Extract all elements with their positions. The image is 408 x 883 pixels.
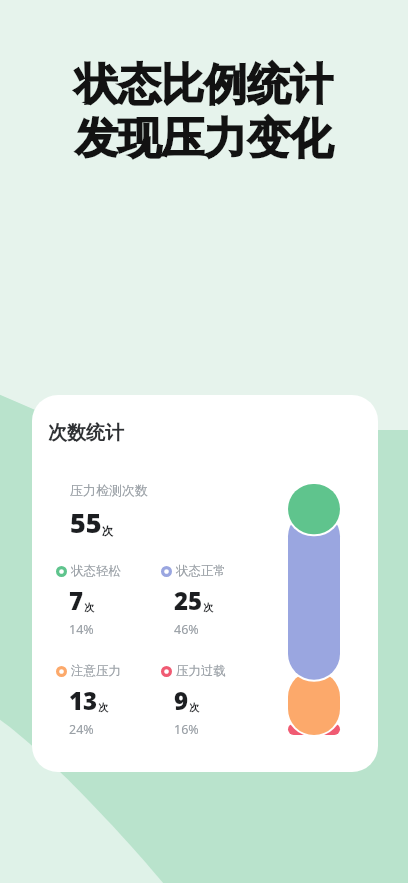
staticText: 次 bbox=[203, 601, 214, 614]
button[interactable]: 次数统计 bbox=[32, 395, 378, 772]
staticText: 状态轻松 bbox=[71, 563, 121, 579]
staticText: 46% bbox=[174, 621, 199, 638]
staticText: 压力过载 bbox=[176, 663, 226, 679]
staticText: 14% bbox=[69, 621, 94, 638]
staticText: 次 bbox=[98, 701, 109, 714]
staticText: 状态正常 bbox=[176, 563, 226, 579]
staticText: 55 bbox=[70, 504, 102, 541]
staticText: 注意压力 bbox=[71, 663, 121, 679]
other: 注意压力 bbox=[56, 666, 67, 677]
staticText: 状态比例统计 bbox=[75, 58, 333, 112]
staticText: 次 bbox=[84, 601, 95, 614]
other: 压力过载 bbox=[161, 666, 172, 677]
staticText: 25 bbox=[174, 584, 203, 617]
button[interactable]: 状态轻松 bbox=[56, 563, 161, 638]
staticText: 发现压力变化 bbox=[75, 112, 333, 166]
staticText: 压力检测次数 bbox=[70, 482, 148, 498]
staticText: 7 bbox=[69, 584, 84, 617]
staticText: 9 bbox=[174, 684, 189, 717]
staticText: 24% bbox=[69, 721, 94, 738]
button[interactable]: 注意压力 bbox=[56, 663, 161, 738]
staticText: 13 bbox=[69, 684, 98, 717]
button[interactable]: 压力过载 bbox=[161, 663, 266, 738]
other: 状态正常 bbox=[161, 566, 172, 577]
staticText: 16% bbox=[174, 721, 199, 738]
button[interactable]: 状态正常 bbox=[161, 563, 266, 638]
staticText: 次数统计 bbox=[48, 421, 124, 445]
staticText: 次 bbox=[189, 701, 200, 714]
other: 状态轻松 bbox=[56, 566, 67, 577]
staticText: 次 bbox=[102, 524, 114, 538]
